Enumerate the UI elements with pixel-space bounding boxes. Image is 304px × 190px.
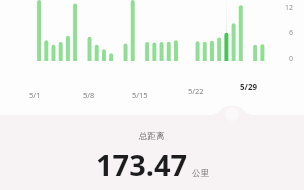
staticText: 173.47 (96, 145, 188, 184)
staticText: 0 (289, 54, 294, 64)
staticText: 5/22 (188, 86, 204, 96)
staticText: 5/29 (240, 81, 258, 92)
button[interactable]: 总距离 (0, 105, 304, 190)
staticText: 5/15 (132, 90, 148, 100)
staticText: 5/8 (83, 90, 95, 100)
staticText: 5/1 (29, 90, 41, 100)
staticText: 12 (285, 3, 294, 13)
button[interactable]: Weekly distance bar chart (0, 0, 304, 78)
staticText: 6 (289, 28, 294, 38)
staticText: 总距离 (139, 131, 165, 142)
staticText: 公里 (192, 168, 209, 179)
